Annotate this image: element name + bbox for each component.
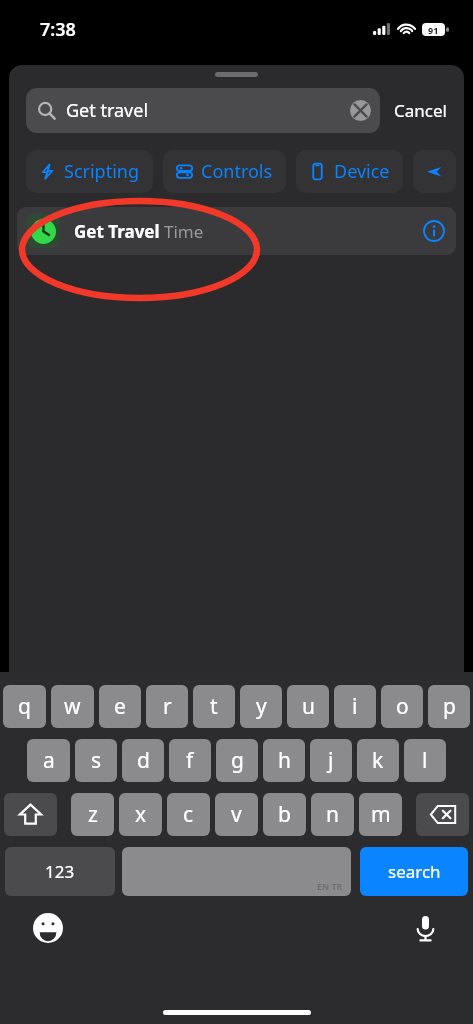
- button[interactable]: j: [310, 739, 352, 782]
- button[interactable]: Space: [122, 847, 351, 896]
- staticText: j: [328, 746, 334, 775]
- button[interactable]: n: [311, 793, 354, 836]
- staticText: g: [231, 746, 244, 775]
- staticText: c: [183, 800, 194, 829]
- button[interactable]: Info: [422, 219, 446, 243]
- staticText: i: [352, 692, 358, 721]
- staticText: y: [256, 692, 267, 721]
- button[interactable]: b: [263, 793, 306, 836]
- button[interactable]: Get Travel Time: [17, 207, 456, 255]
- button[interactable]: h: [263, 739, 305, 782]
- staticText: a: [43, 746, 55, 775]
- button[interactable]: p: [428, 685, 470, 728]
- staticText: v: [231, 800, 242, 829]
- button[interactable]: x: [119, 793, 162, 836]
- button[interactable]: k: [357, 739, 399, 782]
- staticText: 123: [45, 860, 75, 883]
- button[interactable]: Device: [296, 150, 403, 193]
- staticText: w: [64, 692, 81, 721]
- staticText: d: [137, 746, 150, 775]
- button[interactable]: u: [287, 685, 329, 728]
- staticText: Get travel: [66, 98, 149, 123]
- staticText: t: [210, 692, 218, 721]
- staticText: e: [114, 692, 126, 721]
- button[interactable]: v: [215, 793, 258, 836]
- staticText: Controls: [201, 159, 273, 184]
- staticText: 91: [428, 24, 439, 36]
- staticText: Device: [334, 159, 390, 184]
- button[interactable]: search: [360, 847, 468, 896]
- button[interactable]: f: [169, 739, 211, 782]
- button[interactable]: 123: [5, 847, 115, 896]
- staticText: o: [396, 692, 409, 721]
- button[interactable]: Backspace: [416, 793, 469, 836]
- button[interactable]: c: [167, 793, 210, 836]
- button[interactable]: Get travel: [26, 88, 380, 133]
- button[interactable]: m: [359, 793, 402, 836]
- button[interactable]: t: [193, 685, 235, 728]
- button[interactable]: d: [122, 739, 164, 782]
- staticText: Scripting: [64, 159, 140, 184]
- button[interactable]: g: [216, 739, 258, 782]
- button[interactable]: z: [71, 793, 114, 836]
- staticText: r: [163, 692, 172, 721]
- staticText: p: [443, 692, 456, 721]
- button[interactable]: Clear text: [350, 100, 371, 121]
- button[interactable]: [413, 150, 456, 193]
- staticText: h: [278, 746, 291, 775]
- button[interactable]: Cancel: [380, 91, 449, 130]
- staticText: m: [371, 800, 391, 829]
- staticText: EN TR: [317, 880, 343, 892]
- button[interactable]: Shift: [4, 793, 57, 836]
- staticText: b: [278, 800, 291, 829]
- button[interactable]: Controls: [163, 150, 286, 193]
- button[interactable]: w: [51, 685, 94, 728]
- button[interactable]: Scripting: [26, 150, 153, 193]
- staticText: z: [88, 800, 98, 829]
- button[interactable]: a: [27, 739, 70, 782]
- button[interactable]: q: [3, 685, 46, 728]
- button[interactable]: Emoji: [30, 910, 66, 946]
- staticText: f: [186, 746, 194, 775]
- staticText: k: [372, 746, 384, 775]
- staticText: x: [135, 800, 147, 829]
- button[interactable]: s: [75, 739, 117, 782]
- staticText: Get Travel Time: [74, 220, 204, 243]
- button[interactable]: o: [381, 685, 423, 728]
- staticText: q: [18, 692, 31, 721]
- button[interactable]: e: [99, 685, 141, 728]
- staticText: l: [422, 746, 428, 775]
- button[interactable]: r: [146, 685, 188, 728]
- staticText: n: [326, 800, 339, 829]
- button[interactable]: i: [334, 685, 376, 728]
- button[interactable]: y: [240, 685, 282, 728]
- button[interactable]: l: [404, 739, 446, 782]
- staticText: search: [388, 860, 441, 883]
- staticText: u: [302, 692, 315, 721]
- staticText: Cancel: [394, 99, 447, 122]
- button[interactable]: Dictation: [407, 910, 443, 946]
- staticText: 7:38: [40, 17, 76, 42]
- staticText: s: [91, 746, 102, 775]
